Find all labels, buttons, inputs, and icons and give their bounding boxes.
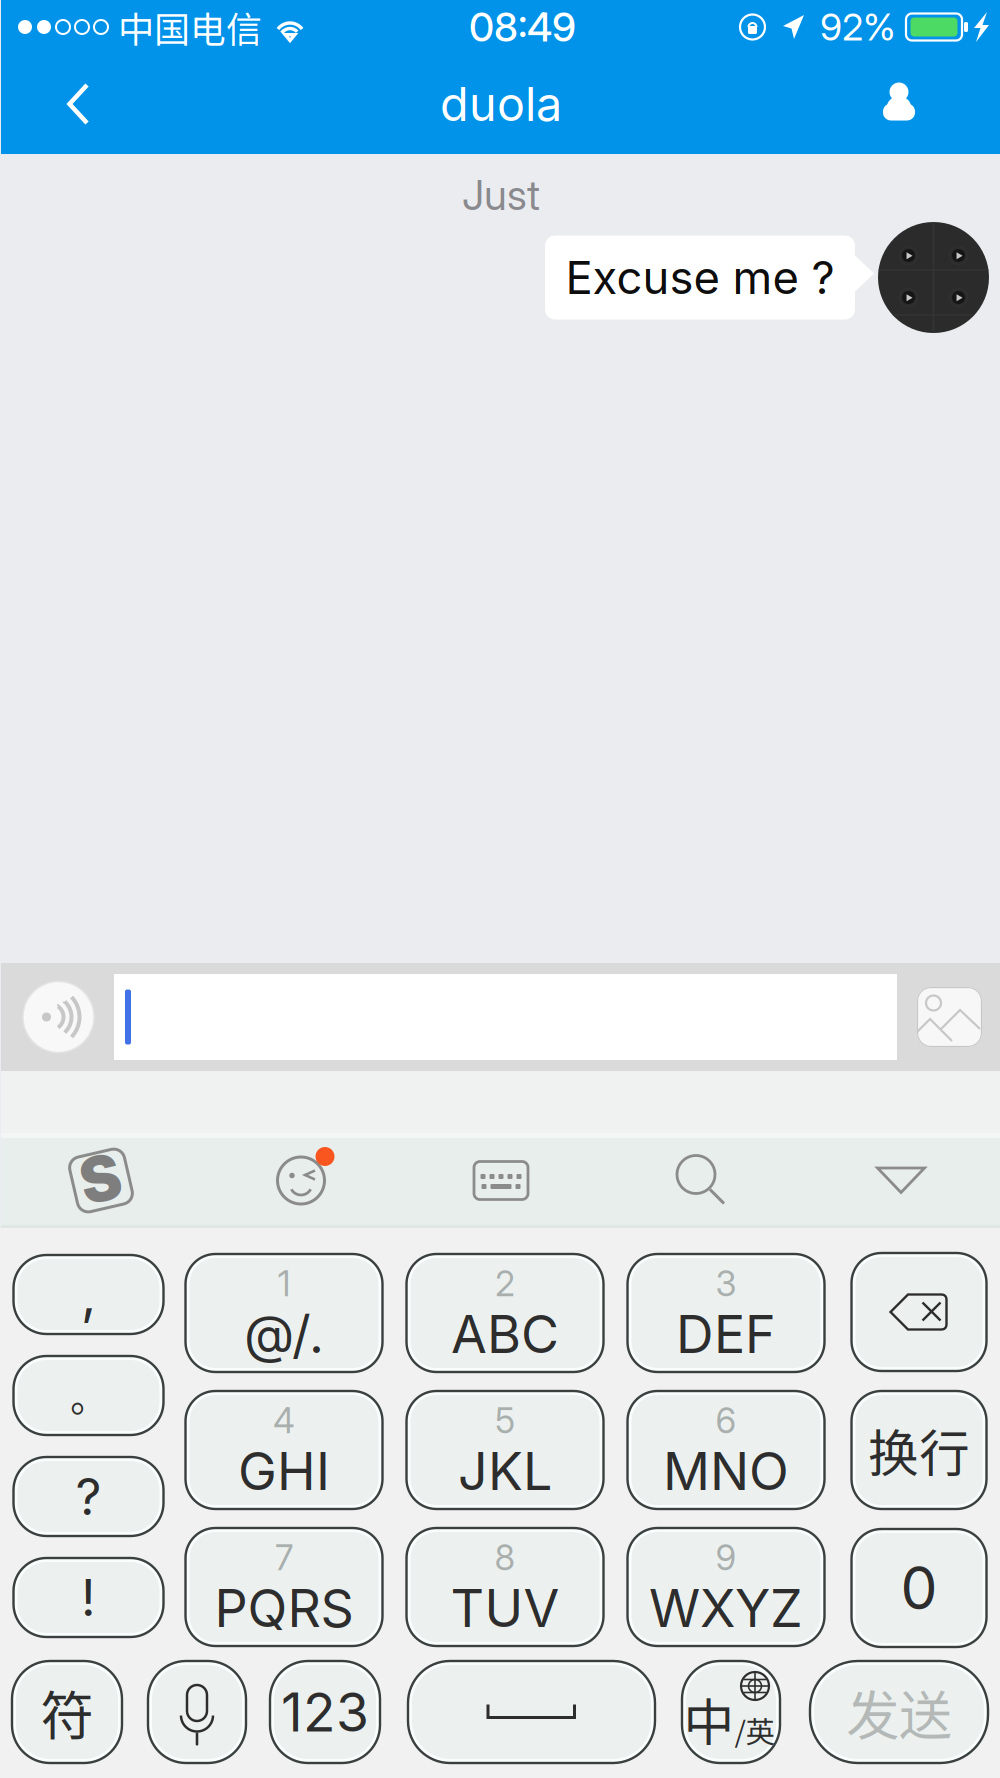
button[interactable]: 3: [627, 1254, 824, 1372]
staticText: ABC: [451, 1302, 559, 1365]
button[interactable]: Voice input: [148, 1661, 246, 1763]
button[interactable]: 换行: [851, 1391, 986, 1509]
button[interactable]: !: [13, 1558, 163, 1637]
staticText: JKL: [458, 1439, 552, 1502]
button[interactable]: 8: [406, 1528, 603, 1646]
button[interactable]: Search: [601, 1133, 801, 1228]
button[interactable]: 6: [627, 1391, 824, 1509]
staticText: PQRS: [214, 1576, 353, 1639]
button[interactable]: Keyboard layout: [401, 1133, 601, 1228]
button[interactable]: 9: [627, 1528, 824, 1646]
staticText: DEF: [676, 1302, 776, 1365]
staticText: duola: [440, 76, 562, 132]
staticText: TUV: [450, 1576, 559, 1639]
button[interactable]: 0: [851, 1529, 986, 1647]
staticText: 换行: [868, 1413, 970, 1487]
staticText: GHI: [238, 1439, 330, 1502]
button[interactable]: Back: [1, 54, 155, 154]
staticText: 7: [275, 1537, 293, 1578]
button[interactable]: Switch Chinese English: [682, 1661, 780, 1763]
button[interactable]: 2: [406, 1254, 603, 1372]
staticText: 92%: [820, 4, 896, 50]
staticText: S: [80, 1141, 121, 1216]
staticText: 9: [715, 1537, 736, 1578]
staticText: 符: [40, 1673, 93, 1751]
staticText: MNO: [663, 1439, 789, 1502]
button[interactable]: 123: [270, 1661, 380, 1763]
button[interactable]: 4: [185, 1391, 382, 1509]
staticText: Excuse me ?: [565, 250, 834, 305]
staticText: 1: [277, 1263, 290, 1304]
button[interactable]: ?: [13, 1457, 163, 1536]
staticText: 3: [715, 1263, 736, 1304]
button[interactable]: Hide keyboard: [801, 1133, 1000, 1228]
staticText: 123: [281, 1680, 369, 1744]
staticText: 6: [715, 1400, 736, 1441]
staticText: 中: [683, 1682, 734, 1756]
button[interactable]: Voice message: [23, 981, 94, 1052]
staticText: 5: [495, 1400, 515, 1441]
staticText: WXYZ: [649, 1576, 803, 1639]
staticText: 08:49: [469, 3, 576, 51]
staticText: 中国电信: [118, 1, 262, 53]
staticText: ,: [81, 1262, 96, 1327]
staticText: Just: [462, 170, 540, 220]
staticText: @/.: [244, 1302, 324, 1365]
staticText: 0: [900, 1552, 937, 1623]
button[interactable]: Contact profile: [848, 54, 950, 154]
button[interactable]: 。: [13, 1356, 163, 1435]
staticText: 2: [495, 1263, 515, 1304]
button[interactable]: Sogou input settings: [1, 1133, 201, 1228]
button[interactable]: 符: [12, 1661, 122, 1763]
button[interactable]: Send photo: [917, 987, 982, 1047]
button[interactable]: ,: [13, 1255, 163, 1334]
button[interactable]: Emoji: [201, 1133, 401, 1228]
staticText: !: [81, 1567, 96, 1628]
staticText: 发送: [846, 1673, 952, 1751]
staticText: 8: [494, 1537, 515, 1578]
button[interactable]: 1: [185, 1254, 382, 1372]
staticText: 4: [273, 1400, 295, 1441]
button[interactable]: 发送: [810, 1661, 988, 1763]
button[interactable]: 5: [406, 1391, 603, 1509]
staticText: 。: [70, 1368, 107, 1423]
staticText: ?: [75, 1466, 101, 1527]
button[interactable]: Backspace: [851, 1253, 986, 1371]
button[interactable]: 7: [185, 1528, 382, 1646]
staticText: /英: [734, 1709, 774, 1751]
button[interactable]: Space: [408, 1661, 655, 1763]
